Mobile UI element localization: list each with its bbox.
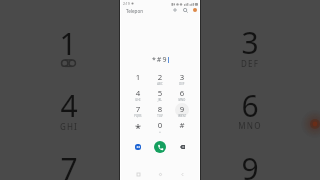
button[interactable]: Account xyxy=(193,8,197,12)
staticText: 6 xyxy=(172,88,192,99)
staticText: 2 xyxy=(150,72,170,83)
button[interactable]: Video call xyxy=(131,140,145,154)
button[interactable] xyxy=(150,118,170,134)
staticText: 5 xyxy=(150,88,170,99)
staticText: 3 xyxy=(172,72,192,83)
staticText: WXYZ xyxy=(172,114,192,118)
button[interactable] xyxy=(128,118,148,134)
button[interactable]: Search xyxy=(181,6,189,14)
button[interactable] xyxy=(150,70,170,86)
staticText: ABC xyxy=(150,82,170,86)
staticText: 7 xyxy=(24,148,114,180)
button[interactable] xyxy=(150,102,170,118)
button[interactable] xyxy=(172,86,192,102)
staticText: MNO xyxy=(172,98,192,102)
button[interactable] xyxy=(128,102,148,118)
staticText: MNO xyxy=(205,120,295,129)
staticText: 1 xyxy=(23,23,113,55)
staticText: + xyxy=(150,130,170,134)
staticText: TUV xyxy=(150,114,170,118)
staticText: 9 xyxy=(205,148,295,180)
staticText: 8 xyxy=(150,104,170,115)
button[interactable] xyxy=(128,86,148,102)
staticText: 7 xyxy=(128,104,148,115)
staticText: 0 xyxy=(150,120,170,131)
button[interactable] xyxy=(128,70,148,86)
button[interactable]: Backspace xyxy=(175,140,189,154)
staticText: DEF xyxy=(172,82,192,86)
staticText: 4 xyxy=(24,85,114,117)
button[interactable]: Add contact xyxy=(171,6,179,14)
staticText: 1 xyxy=(128,72,148,83)
staticText: 4 xyxy=(128,88,148,99)
staticText: 9 xyxy=(172,104,192,115)
button[interactable] xyxy=(172,70,192,86)
staticText: 3 xyxy=(205,22,295,54)
staticText: PQRS xyxy=(128,114,148,118)
staticText: 6 xyxy=(205,85,295,117)
staticText: GHI xyxy=(24,121,114,130)
button[interactable]: Call xyxy=(154,141,166,153)
staticText: 2:19 xyxy=(123,1,130,6)
button[interactable] xyxy=(172,118,192,134)
staticText: Telepon xyxy=(126,8,144,14)
staticText: DEF xyxy=(205,58,295,67)
staticText: GHI xyxy=(128,98,148,102)
button[interactable] xyxy=(150,86,170,102)
staticText: # xyxy=(172,120,192,131)
staticText: * xyxy=(128,120,148,132)
button[interactable]: Home xyxy=(154,170,166,179)
button[interactable] xyxy=(172,102,192,118)
staticText: JKL xyxy=(150,98,170,102)
button[interactable]: Back xyxy=(176,170,188,179)
button[interactable]: Recent apps xyxy=(132,170,144,179)
staticText: *#9 xyxy=(152,55,168,65)
